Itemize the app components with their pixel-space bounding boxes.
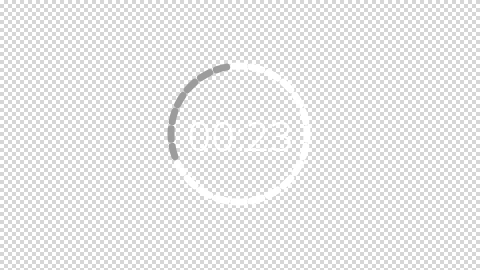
staticText: 00:23 [187,107,294,163]
button[interactable]: Timer progress 00:23 [0,0,480,270]
